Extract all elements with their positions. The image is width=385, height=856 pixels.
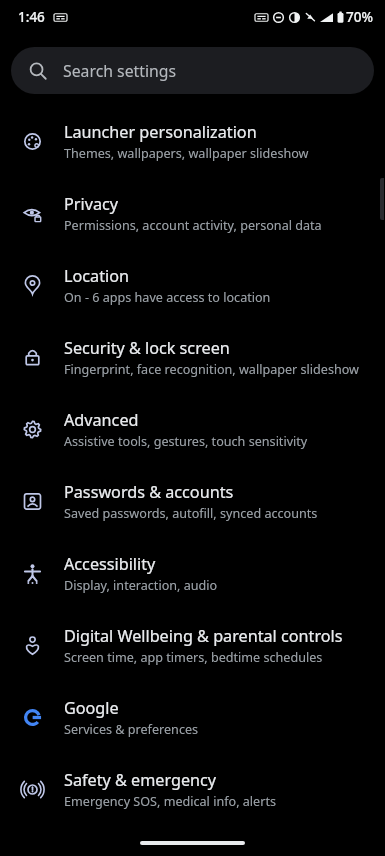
staticText: Display, interaction, audio (64, 577, 218, 594)
button[interactable]: Advanced (0, 393, 385, 465)
staticText: Themes, wallpapers, wallpaper slideshow (64, 145, 309, 162)
staticText: Fingerprint, face recognition, wallpaper… (64, 361, 360, 378)
button[interactable]: Safety & emergency (0, 753, 385, 825)
staticText: 1:46 (18, 8, 45, 26)
button[interactable]: Digital Wellbeing & parental controls (0, 609, 385, 681)
staticText: Digital Wellbeing & parental controls (64, 625, 343, 647)
staticText: Advanced (64, 409, 139, 431)
button[interactable]: Search settings (11, 47, 374, 94)
staticText: Location (64, 265, 129, 287)
staticText: Safety & emergency (64, 769, 217, 791)
staticText: Permissions, account activity, personal … (64, 217, 322, 234)
staticText: Passwords & accounts (64, 481, 234, 503)
button[interactable]: Location (0, 249, 385, 321)
button[interactable]: Accessibility (0, 537, 385, 609)
staticText: Security & lock screen (64, 337, 230, 359)
staticText: 70% (346, 8, 373, 26)
staticText: Screen time, app timers, bedtime schedul… (64, 649, 323, 666)
staticText: Services & preferences (64, 721, 199, 738)
staticText: Privacy (64, 193, 118, 215)
staticText: Assistive tools, gestures, touch sensiti… (64, 433, 308, 450)
button[interactable]: Launcher personalization (0, 105, 385, 177)
button[interactable]: Security & lock screen (0, 321, 385, 393)
staticText: Saved passwords, autofill, synced accoun… (64, 505, 318, 522)
staticText: Google (64, 697, 119, 719)
staticText: Emergency SOS, medical info, alerts (64, 793, 276, 810)
button[interactable]: Privacy (0, 177, 385, 249)
button[interactable]: Passwords & accounts (0, 465, 385, 537)
staticText: Accessibility (64, 553, 156, 575)
button[interactable]: Google (0, 681, 385, 753)
staticText: Search settings (63, 60, 177, 82)
staticText: On - 6 apps have access to location (64, 289, 271, 306)
staticText: Launcher personalization (64, 121, 257, 143)
